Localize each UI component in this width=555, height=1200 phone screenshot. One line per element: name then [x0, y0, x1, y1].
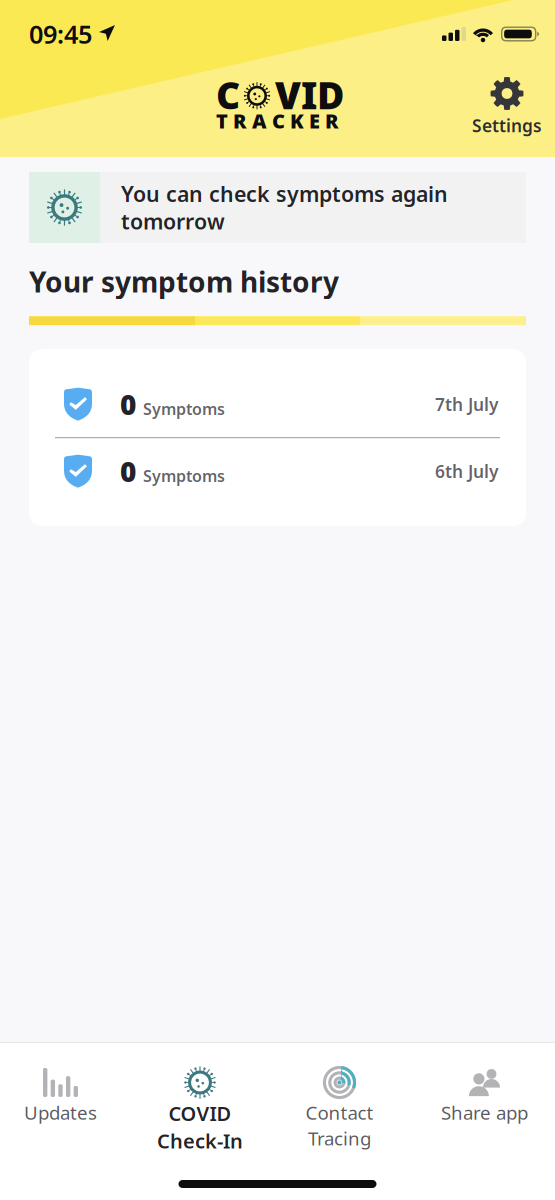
staticText: 6th July — [435, 460, 498, 483]
staticText: T R A C K E R — [216, 108, 339, 134]
staticText: Updates — [24, 1100, 97, 1125]
staticText: 7th July — [435, 393, 498, 416]
staticText: Settings — [472, 114, 542, 137]
button[interactable]: Share app — [407, 1043, 555, 1161]
button[interactable]: 0 — [29, 438, 526, 504]
staticText: C — [216, 70, 240, 120]
staticText: COVID — [168, 1100, 231, 1127]
staticText: Symptoms — [143, 398, 225, 419]
staticText: VID — [275, 70, 344, 120]
staticText: Share app — [441, 1100, 528, 1125]
staticText: Check-In — [157, 1128, 243, 1154]
staticText: 09:45 — [29, 17, 92, 51]
button[interactable]: Updates — [0, 1043, 121, 1161]
staticText: Your symptom history — [29, 263, 339, 300]
staticText: Contact — [305, 1100, 373, 1125]
staticText: 0 — [120, 453, 136, 490]
staticText: You can check symptoms again tomorrow — [121, 180, 448, 235]
staticText: Symptoms — [143, 465, 225, 486]
button[interactable]: 0 — [29, 371, 526, 437]
staticText: 0 — [120, 386, 136, 423]
button[interactable]: Settings — [459, 77, 555, 137]
button[interactable]: COVID Check-In — [121, 1043, 279, 1161]
button[interactable]: Contact Tracing — [279, 1043, 400, 1161]
staticText: Tracing — [308, 1126, 371, 1151]
